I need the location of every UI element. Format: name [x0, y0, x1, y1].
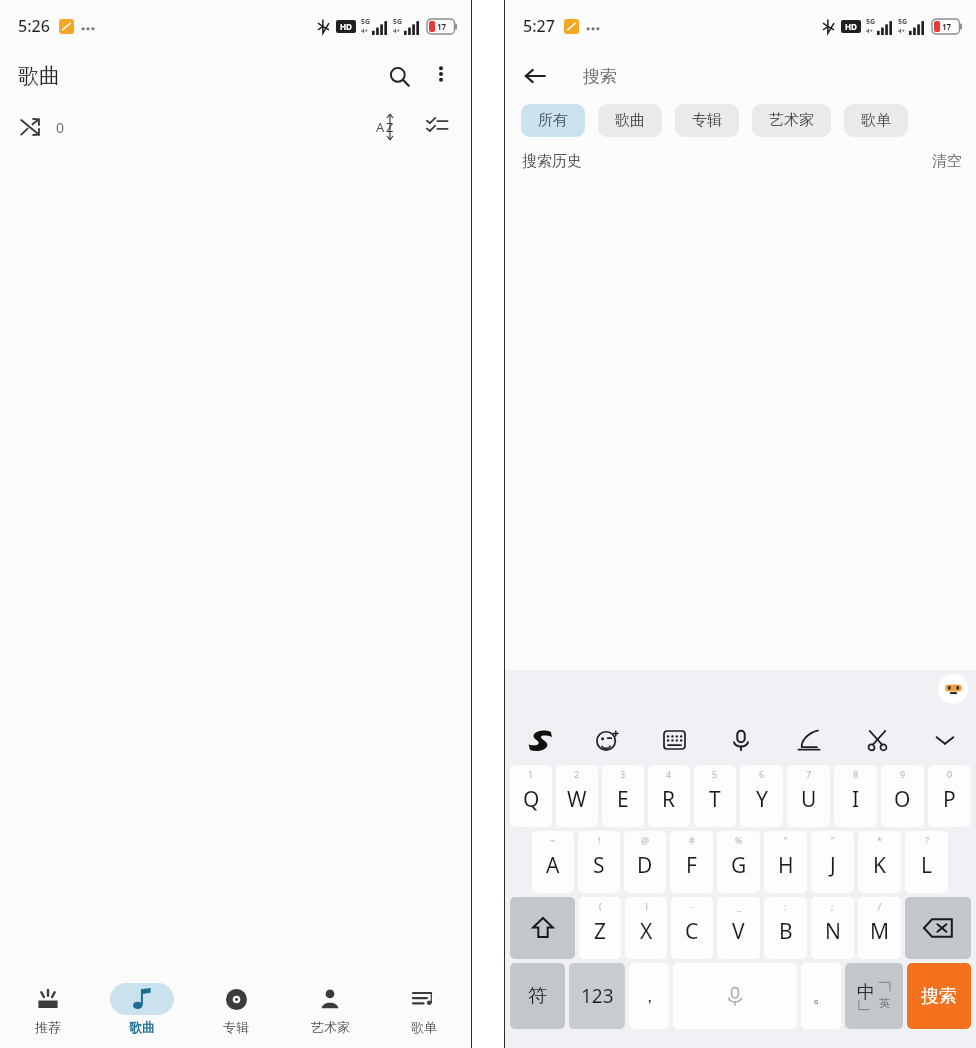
button[interactable]: 7 [787, 765, 830, 827]
staticText: 0 [947, 768, 953, 780]
button[interactable]: * [858, 831, 901, 893]
button[interactable]: _ [717, 897, 760, 959]
button[interactable]: Emoji [590, 723, 624, 757]
staticText: Z [594, 917, 607, 946]
staticText: O [894, 785, 911, 814]
staticText: C [685, 917, 699, 946]
button[interactable]: Back [513, 54, 557, 98]
staticText: Q [523, 785, 540, 814]
button[interactable]: 艺术家 [752, 104, 831, 137]
staticText: 5G [393, 17, 403, 27]
staticText: 推荐 [35, 1019, 61, 1035]
button[interactable]: 9 [881, 765, 924, 827]
staticText: A [376, 118, 385, 136]
button[interactable]: 4 [648, 765, 690, 827]
staticText: 17 [942, 21, 952, 32]
button[interactable]: Space, voice input [673, 963, 797, 1029]
staticText: 5:26 [18, 15, 50, 37]
staticText: 。 [813, 986, 830, 1007]
staticText: 5G [361, 17, 371, 27]
button[interactable]: 歌曲 [95, 970, 189, 1048]
button[interactable]: Keyboard layout [657, 723, 691, 757]
button[interactable]: ~ [532, 831, 574, 893]
staticText: : [784, 900, 787, 912]
staticText: 123 [581, 983, 614, 1009]
button[interactable]: 歌单 [844, 104, 908, 137]
button[interactable]: 搜索 [907, 963, 971, 1029]
button[interactable]: 2 [556, 765, 598, 827]
staticText: HD [340, 21, 352, 32]
staticText: 歌单 [861, 111, 891, 130]
button[interactable]: ) [625, 897, 667, 959]
button[interactable]: # [670, 831, 713, 893]
staticText: 3 [620, 768, 626, 780]
button[interactable]: 专辑 [675, 104, 739, 137]
button[interactable]: 专辑 [189, 970, 283, 1048]
button[interactable]: : [764, 897, 807, 959]
staticText: 0 [56, 118, 65, 137]
staticText: 4+ [361, 27, 368, 35]
button[interactable]: Collapse keyboard [928, 723, 962, 757]
button[interactable]: Shift [510, 897, 575, 959]
button[interactable]: Select items [417, 105, 457, 145]
staticText: R [662, 785, 676, 814]
staticText: 1 [528, 768, 534, 780]
button[interactable]: ! [578, 831, 620, 893]
staticText: 艺术家 [311, 1019, 350, 1035]
button[interactable]: Clipboard [860, 723, 894, 757]
button[interactable]: 5 [694, 765, 736, 827]
button[interactable]: ? [905, 831, 948, 893]
button[interactable]: Search [377, 54, 421, 98]
staticText: M [870, 917, 890, 946]
button[interactable]: 歌单 [377, 970, 471, 1048]
button[interactable]: / [858, 897, 901, 959]
staticText: 歌曲 [129, 1019, 155, 1035]
button[interactable]: 歌曲 [598, 104, 662, 137]
button[interactable]: ， [629, 963, 669, 1029]
staticText: V [732, 917, 745, 946]
staticText: # [689, 834, 695, 846]
staticText: ) [645, 900, 648, 912]
button[interactable]: Sogou [523, 723, 557, 757]
button[interactable]: Avatar [938, 674, 968, 704]
button[interactable]: 0 [928, 765, 971, 827]
staticText: 2 [574, 768, 580, 780]
button[interactable]: - [671, 897, 713, 959]
button[interactable]: 所有 [521, 104, 585, 137]
staticText: 8 [853, 768, 859, 780]
button[interactable]: Voice input [724, 723, 758, 757]
button[interactable]: Backspace [905, 897, 971, 959]
staticText: Y [756, 785, 768, 814]
button[interactable]: 符 [510, 963, 565, 1029]
staticText: D [637, 851, 653, 880]
staticText: 专辑 [692, 111, 722, 130]
button[interactable]: ; [811, 897, 854, 959]
staticText: - [691, 900, 694, 912]
button[interactable]: Sort A to Z [363, 105, 407, 149]
staticText: @ [641, 834, 650, 846]
button[interactable]: More options [421, 54, 461, 94]
button[interactable]: 艺术家 [283, 970, 377, 1048]
staticText: 17 [437, 21, 447, 32]
button[interactable]: 推荐 [0, 970, 95, 1048]
staticText: G [731, 851, 747, 880]
button[interactable]: 1 [510, 765, 552, 827]
staticText: 4+ [393, 27, 400, 35]
button[interactable]: Handwriting [792, 723, 826, 757]
staticText: 4+ [898, 27, 905, 35]
button[interactable]: 0 [12, 109, 65, 145]
staticText: 搜索历史 [522, 152, 582, 171]
button[interactable]: 。 [801, 963, 841, 1029]
button[interactable]: 6 [740, 765, 783, 827]
button[interactable]: 8 [834, 765, 877, 827]
button[interactable]: 3 [602, 765, 644, 827]
button[interactable]: 123 [569, 963, 625, 1029]
button[interactable]: % [717, 831, 760, 893]
button[interactable]: “ [764, 831, 807, 893]
button[interactable]: @ [624, 831, 666, 893]
button[interactable]: ” [811, 831, 854, 893]
staticText: A [546, 851, 560, 880]
button[interactable]: ( [579, 897, 621, 959]
button[interactable]: Switch Chinese English [845, 963, 903, 1029]
button[interactable]: 清空 [932, 152, 962, 171]
